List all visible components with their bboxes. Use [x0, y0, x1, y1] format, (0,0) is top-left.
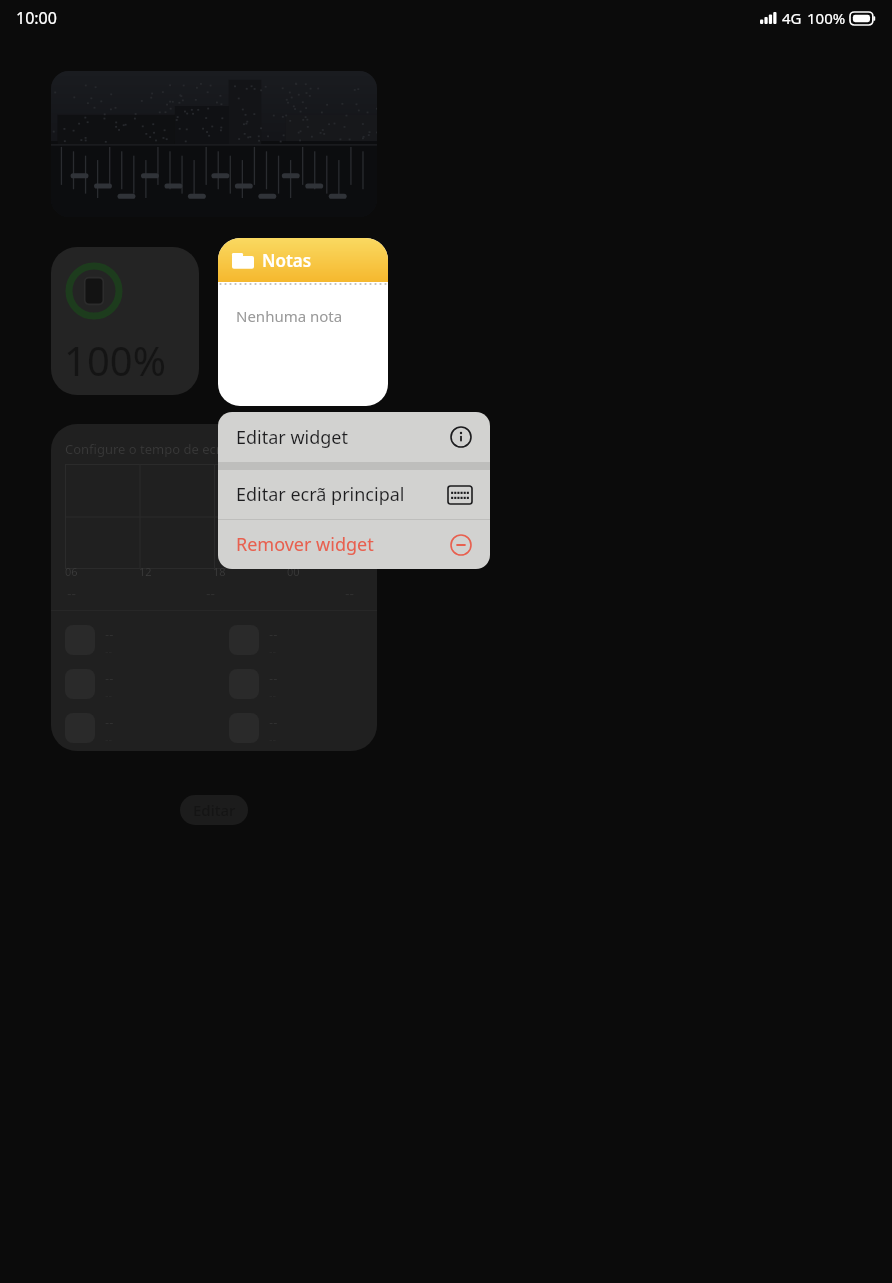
staticText: Editar widget	[236, 425, 450, 450]
button[interactable]: Notas widget	[218, 238, 388, 406]
staticText: Editar ecrã principal	[236, 482, 448, 507]
staticText: Configure o tempo de ecrã no iPhone	[65, 440, 294, 458]
staticText: 10:00	[16, 7, 57, 29]
staticText: 12	[139, 564, 152, 579]
other: Edit home screen	[448, 486, 472, 504]
button[interactable]: Screen time widget	[51, 424, 377, 751]
staticText: 06	[65, 564, 78, 579]
staticText: Remover widget	[236, 532, 450, 557]
button[interactable]: Battery 100 percent	[51, 247, 199, 395]
staticText: 18	[213, 564, 226, 579]
staticText: Notas	[262, 249, 312, 272]
button[interactable]: Editar	[180, 795, 248, 825]
button[interactable]: Editar ecrã principal	[218, 470, 490, 519]
staticText: 4G	[782, 8, 802, 28]
button[interactable]: Remover widget	[218, 520, 490, 569]
button[interactable]: Photo widget	[51, 71, 377, 217]
staticText: Nenhuma nota	[236, 306, 343, 326]
staticText: 00	[287, 564, 300, 579]
staticText: 100%	[807, 8, 846, 28]
other: Remove widget	[450, 534, 472, 556]
other: Info	[450, 426, 472, 448]
staticText: 100%	[64, 333, 166, 387]
button[interactable]: Editar widget	[218, 412, 490, 462]
